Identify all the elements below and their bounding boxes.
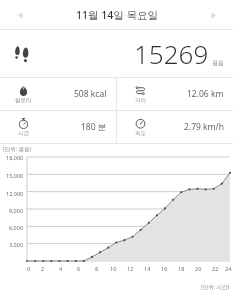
staticText: 18,000 [6,154,24,161]
staticText: 속도 [135,130,146,137]
staticText: 0 [27,265,31,272]
staticText: 12.06 km [187,88,224,100]
staticText: 11월 14일 목요일 [76,8,158,22]
staticText: (단위: 걸음) [3,145,32,153]
button[interactable]: Next day [201,3,225,27]
staticText: 24 [225,265,232,272]
staticText: 6 [77,265,81,272]
staticText: 8 [95,265,99,272]
staticText: 508 kcal [74,88,107,100]
staticText: 거리 [135,97,146,104]
staticText: 15269 [134,36,209,71]
other: Speed [135,118,146,129]
staticText: 2 [41,265,45,272]
staticText: 16 [161,265,168,272]
staticText: 시간 [18,130,29,137]
button[interactable]: Calories [0,78,116,110]
staticText: (단위: 시간) [201,283,230,291]
other: Distance [135,85,146,96]
button[interactable]: Distance [117,78,233,110]
staticText: 20 [195,265,202,272]
staticText: 12,000 [6,190,24,197]
staticText: 9,000 [9,207,24,214]
other: Time [18,118,29,129]
staticText: 칼로리 [15,97,32,104]
staticText: 14 [144,265,151,272]
staticText: 18 [178,265,185,272]
staticText: 12 [127,265,134,272]
staticText: 걸음 [212,59,224,67]
staticText: 6,000 [9,224,24,231]
staticText: 15,000 [6,172,24,179]
button[interactable]: Previous day [8,3,32,27]
staticText: 2.79 km/h [184,121,224,133]
staticText: 3,000 [9,241,24,248]
staticText: 4 [59,265,63,272]
button[interactable]: Time [0,111,116,143]
staticText: 180 분 [81,121,107,133]
button[interactable]: 15269 [0,30,233,77]
staticText: 10 [110,265,117,272]
staticText: 22 [212,265,219,272]
button[interactable]: Speed [117,111,233,143]
other: Calories [18,85,29,96]
